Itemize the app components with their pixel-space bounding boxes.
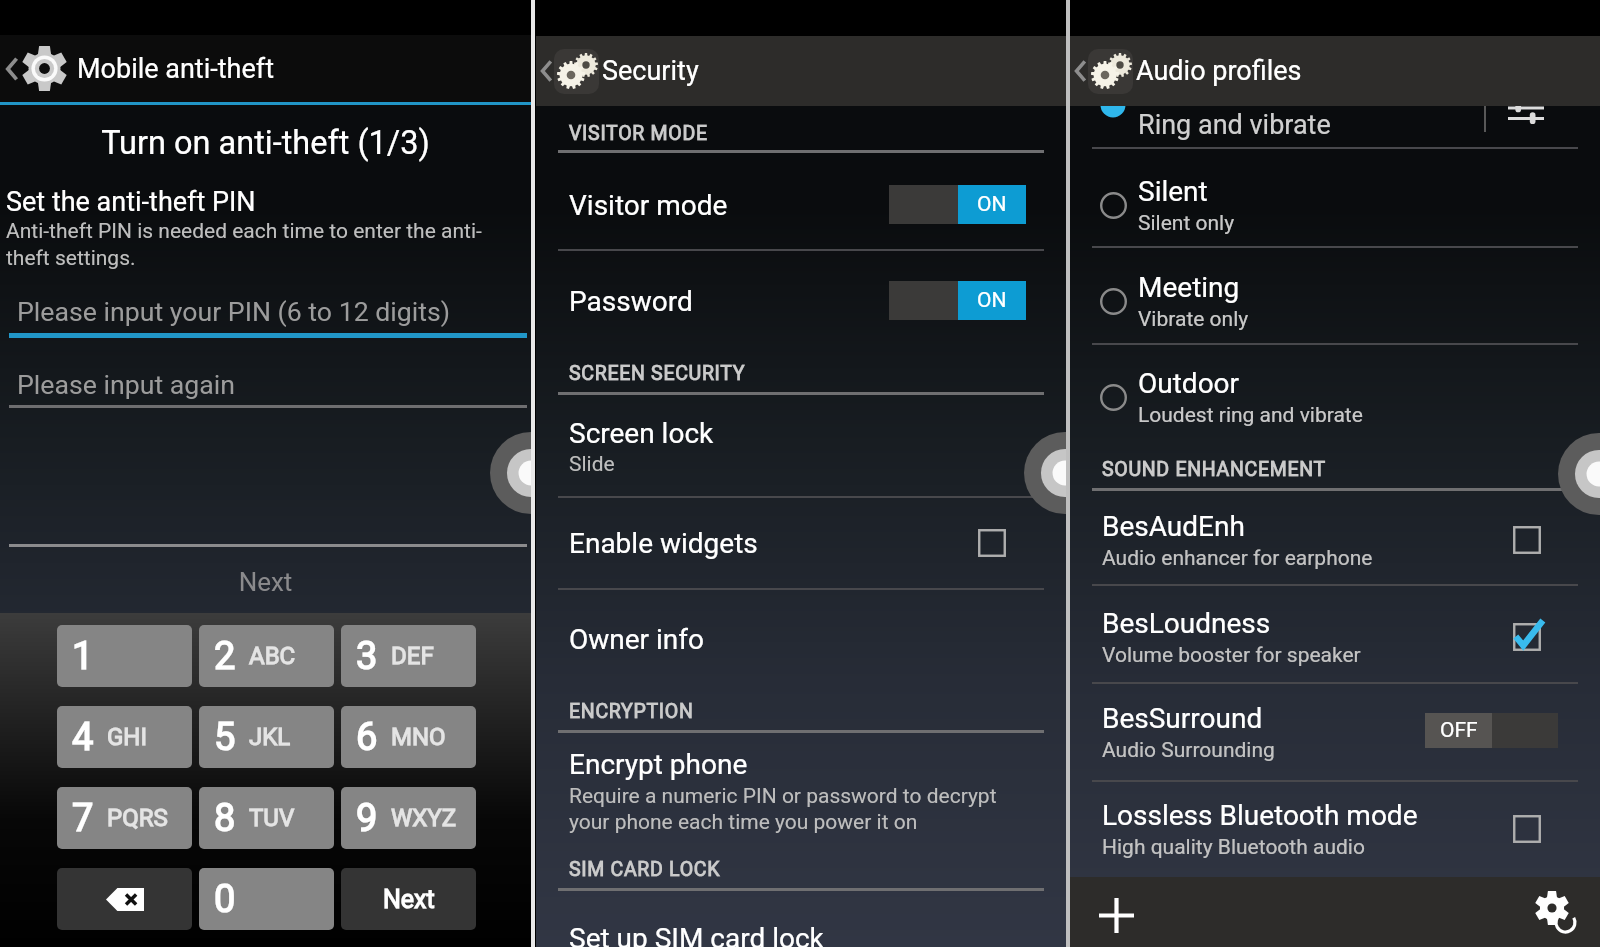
staticText: BesSurround	[1102, 702, 1263, 735]
button[interactable]: 4	[57, 706, 192, 768]
button[interactable]	[1503, 805, 1551, 853]
button[interactable]: ON	[889, 185, 1026, 224]
staticText: Screen lock	[569, 417, 714, 450]
staticText: BesLoudness	[1102, 607, 1271, 640]
staticText: Visitor mode	[569, 189, 728, 222]
staticText: PQRS	[107, 804, 168, 832]
staticText: 9	[356, 796, 378, 841]
button[interactable]: Meeting	[1070, 255, 1600, 347]
button[interactable]: OFF	[1425, 713, 1558, 748]
staticText: Turn on anti-theft (1/3)	[0, 124, 531, 162]
staticText: Silent only	[1138, 211, 1235, 236]
staticText: Anti-theft PIN is needed each time to en…	[6, 219, 526, 271]
staticText: Encrypt phone	[569, 748, 748, 781]
staticText: SCREEN SECURITY	[569, 362, 746, 385]
staticText: WXYZ	[391, 804, 457, 832]
staticText: SIM CARD LOCK	[569, 858, 721, 881]
staticText: Loudest ring and vibrate	[1138, 403, 1363, 428]
button[interactable]: Security	[538, 36, 1066, 106]
button[interactable]: 8	[199, 787, 334, 849]
staticText: Owner info	[569, 623, 705, 656]
staticText: Slide	[569, 452, 615, 477]
staticText: 4	[72, 715, 94, 760]
staticText: 8	[214, 796, 236, 841]
staticText: Please input your PIN (6 to 12 digits)	[17, 296, 451, 327]
staticText: Audio Surrounding	[1102, 738, 1275, 763]
staticText: Next	[383, 885, 435, 914]
staticText: Outdoor	[1138, 367, 1240, 400]
staticText: Meeting	[1138, 271, 1240, 304]
staticText: Set the anti-theft PIN	[6, 186, 256, 218]
button[interactable]	[968, 519, 1016, 567]
button[interactable]: 2	[199, 625, 334, 687]
button[interactable]: Next	[341, 868, 476, 930]
staticText: Require a numeric PIN or password to dec…	[569, 784, 1039, 834]
staticText: Password	[569, 285, 693, 318]
button[interactable]: 7	[57, 787, 192, 849]
staticText: 1	[72, 634, 94, 679]
staticText: ON	[977, 288, 1007, 313]
staticText: Audio enhancer for earphone	[1102, 546, 1373, 571]
button[interactable]: 0	[199, 868, 334, 930]
button[interactable]: Reset to default	[1529, 886, 1581, 938]
staticText: BesAudEnh	[1102, 510, 1245, 543]
button[interactable]: 1	[57, 625, 192, 687]
staticText: DEF	[391, 642, 434, 670]
staticText: 2	[214, 634, 236, 679]
staticText: 6	[356, 715, 378, 760]
button[interactable]: Mobile anti-theft	[3, 35, 531, 102]
staticText: Vibrate only	[1138, 307, 1249, 332]
staticText: TUV	[249, 804, 295, 832]
staticText: JKL	[249, 723, 291, 751]
button[interactable]: Audio profiles	[1072, 36, 1600, 106]
staticText: Audio profiles	[1136, 55, 1302, 87]
button[interactable]	[1503, 613, 1551, 661]
button[interactable]: Outdoor	[1070, 351, 1600, 443]
button[interactable]: ON	[889, 281, 1026, 320]
staticText: Lossless Bluetooth mode	[1102, 799, 1418, 832]
button[interactable]	[1089, 277, 1137, 325]
staticText: Silent	[1138, 175, 1208, 208]
button[interactable]: Add profile	[1091, 890, 1141, 940]
staticText: GHI	[107, 723, 147, 751]
staticText: ENCRYPTION	[569, 700, 694, 723]
staticText: VISITOR MODE	[569, 122, 708, 145]
button[interactable]: 9	[341, 787, 476, 849]
staticText: SOUND ENHANCEMENT	[1102, 458, 1326, 481]
staticText: 0	[214, 877, 236, 922]
staticText: ABC	[249, 642, 296, 670]
staticText: Next	[0, 567, 531, 597]
button[interactable]	[1503, 516, 1551, 564]
button[interactable]: 3	[341, 625, 476, 687]
staticText: Ring and vibrate	[1138, 109, 1331, 141]
staticText: High quality Bluetooth audio	[1102, 835, 1365, 860]
button[interactable]: Silent	[1070, 159, 1600, 251]
staticText: Volume booster for speaker	[1102, 643, 1361, 668]
staticText: Set up SIM card lock	[569, 922, 824, 947]
button[interactable]	[1089, 373, 1137, 421]
staticText: ON	[977, 192, 1007, 217]
button[interactable]: 6	[341, 706, 476, 768]
staticText: MNO	[391, 723, 446, 751]
staticText: 5	[214, 715, 236, 760]
staticText: Please input again	[17, 369, 236, 400]
staticText: 3	[356, 634, 378, 679]
staticText: Security	[602, 55, 699, 87]
staticText: Enable widgets	[569, 527, 758, 560]
staticText: Mobile anti-theft	[77, 53, 274, 85]
staticText: 7	[72, 796, 94, 841]
button[interactable]	[1089, 181, 1137, 229]
button[interactable]: 5	[199, 706, 334, 768]
staticText: OFF	[1440, 718, 1478, 743]
button[interactable]: Backspace	[57, 868, 192, 930]
